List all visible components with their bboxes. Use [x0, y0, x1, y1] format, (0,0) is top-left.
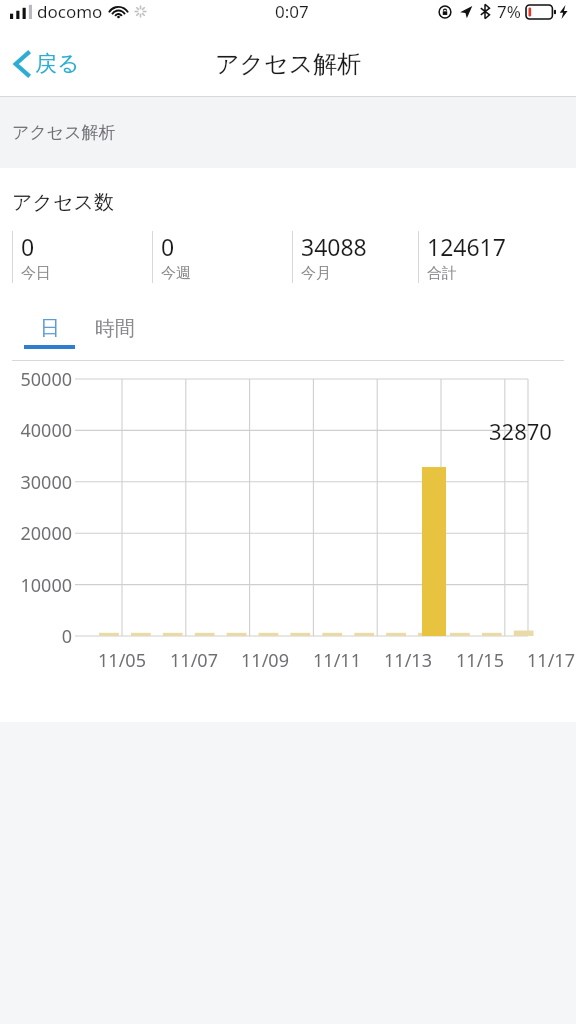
- button[interactable]: 時間: [85, 309, 145, 347]
- staticText: 戻る: [35, 50, 80, 78]
- staticText: 時間: [95, 316, 135, 341]
- staticText: 7%: [497, 0, 521, 23]
- staticText: 11/11: [313, 648, 361, 673]
- staticText: 34088: [301, 231, 367, 262]
- staticText: 11/09: [241, 648, 289, 673]
- staticText: 11/13: [384, 648, 432, 673]
- staticText: 11/17: [527, 648, 575, 673]
- button[interactable]: 戻る: [10, 44, 84, 84]
- staticText: 今月: [301, 264, 331, 283]
- staticText: 0: [161, 231, 175, 262]
- staticText: 11/07: [170, 648, 218, 673]
- staticText: 0: [21, 231, 35, 262]
- staticText: 今日: [21, 264, 51, 283]
- staticText: アクセス解析: [12, 122, 116, 143]
- staticText: 124617: [427, 231, 506, 262]
- staticText: 11/15: [456, 648, 504, 673]
- staticText: docomo: [37, 0, 103, 23]
- staticText: 0: [61, 624, 72, 649]
- staticText: 11/05: [98, 648, 146, 673]
- staticText: アクセス数: [12, 190, 114, 215]
- staticText: 合計: [427, 264, 457, 283]
- staticText: 40000: [20, 418, 72, 443]
- staticText: 50000: [20, 367, 72, 392]
- staticText: 日: [40, 316, 60, 341]
- staticText: 今週: [161, 264, 191, 283]
- staticText: 32870: [489, 416, 552, 446]
- button[interactable]: 日: [24, 309, 75, 347]
- staticText: 30000: [20, 470, 72, 495]
- staticText: アクセス解析: [215, 49, 362, 79]
- staticText: 0:07: [275, 0, 309, 23]
- staticText: 10000: [20, 573, 72, 598]
- staticText: 20000: [20, 521, 72, 546]
